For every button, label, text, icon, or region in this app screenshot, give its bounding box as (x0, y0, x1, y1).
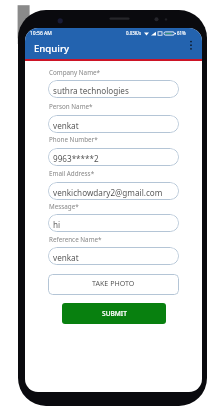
staticText: suthra technologies (53, 85, 129, 96)
staticText: 10:56 AM (30, 30, 52, 37)
button[interactable]: More options (184, 38, 198, 52)
staticText: Enquiry (34, 42, 70, 55)
staticText: TAKE PHOTO (92, 278, 135, 288)
button[interactable]: TAKE PHOTO (48, 274, 179, 295)
staticText: 9963*****2 (53, 153, 99, 164)
button[interactable]: venkat (48, 247, 179, 265)
staticText: SUBMIT (102, 309, 127, 318)
staticText: venkat (53, 120, 79, 131)
staticText: 61% (177, 30, 186, 36)
staticText: Message* (49, 202, 79, 211)
button[interactable]: venkat (48, 115, 179, 133)
staticText: Reference Name* (49, 235, 102, 244)
button[interactable]: suthra technologies (48, 80, 179, 98)
button[interactable]: venkichowdary2@gmail.com (48, 182, 179, 200)
button[interactable]: 9963*****2 (48, 148, 179, 166)
staticText: Person Name* (49, 102, 93, 111)
staticText: hi (53, 219, 61, 230)
button[interactable]: SUBMIT (62, 303, 166, 324)
staticText: Phone Number* (49, 135, 98, 144)
staticText: venkat (53, 252, 79, 263)
staticText: 0.03K/s (126, 30, 142, 36)
staticText: Email Address* (49, 169, 95, 178)
button[interactable]: hi (48, 214, 179, 232)
staticText: venkichowdary2@gmail.com (53, 187, 163, 198)
staticText: Company Name* (49, 68, 101, 77)
